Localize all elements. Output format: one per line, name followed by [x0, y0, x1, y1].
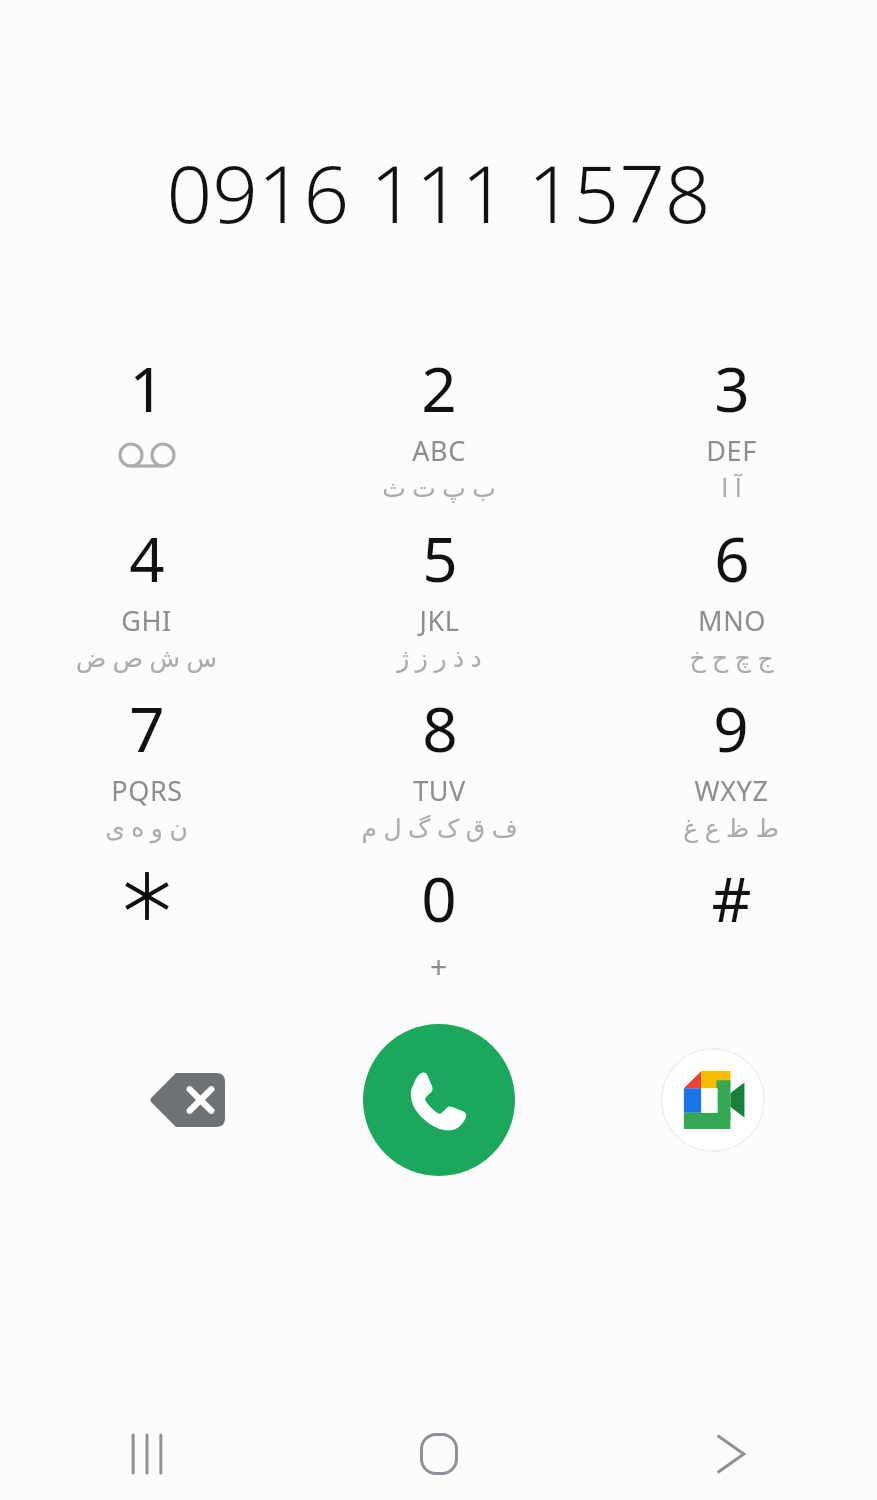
button[interactable] [0, 850, 293, 1002]
staticText: ن و ه ی [105, 810, 188, 844]
button[interactable]: Backspace [112, 1025, 262, 1175]
staticText: WXYZ [694, 772, 769, 809]
staticText: 3 [714, 346, 750, 430]
staticText: GHI [121, 602, 172, 639]
staticText: آ ا [721, 470, 742, 504]
staticText: 0 [421, 856, 457, 940]
staticText: + [430, 946, 448, 987]
staticText: # [711, 856, 752, 940]
button[interactable]: 7 [0, 680, 293, 850]
button[interactable]: 5 [293, 510, 585, 680]
button[interactable]: 9 [585, 680, 877, 850]
staticText: MNO [698, 602, 766, 639]
staticText: د ذ ر ز ژ [397, 640, 482, 674]
staticText: 1 [129, 346, 165, 430]
staticText: 6 [714, 516, 750, 600]
staticText: 2 [421, 346, 457, 430]
staticText: PQRS [111, 772, 183, 809]
button[interactable]: 3 [585, 340, 877, 510]
staticText: 5 [422, 516, 458, 600]
staticText: 4 [129, 516, 165, 600]
button[interactable]: Home [293, 1408, 585, 1500]
staticText: 8 [422, 686, 458, 770]
staticText: ط ظ ع غ [683, 810, 779, 844]
button[interactable]: Call [363, 1024, 515, 1176]
staticText: ABC [412, 432, 466, 469]
button[interactable]: 8 [293, 680, 585, 850]
button[interactable]: 4 [0, 510, 293, 680]
button[interactable]: Back [585, 1408, 877, 1500]
staticText: س ش ص ض [76, 640, 217, 674]
staticText: ج چ ح خ [689, 640, 774, 674]
button[interactable]: 0 [293, 850, 585, 1002]
staticText: 7 [129, 686, 165, 770]
staticText: 0916 111 1578 [166, 137, 711, 246]
button[interactable]: # [585, 850, 877, 1002]
button[interactable]: Video call [661, 1048, 765, 1152]
staticText: TUV [413, 772, 466, 809]
button[interactable]: 1 [0, 340, 293, 510]
staticText: ب پ ت ث [382, 470, 496, 504]
button[interactable]: 6 [585, 510, 877, 680]
button[interactable]: 2 [293, 340, 585, 510]
staticText: JKL [419, 602, 460, 639]
staticText: ف ق ک گ ل م [361, 810, 518, 844]
staticText: 9 [713, 686, 749, 770]
staticText: DEF [706, 432, 757, 469]
button[interactable]: Recent apps [0, 1408, 293, 1500]
